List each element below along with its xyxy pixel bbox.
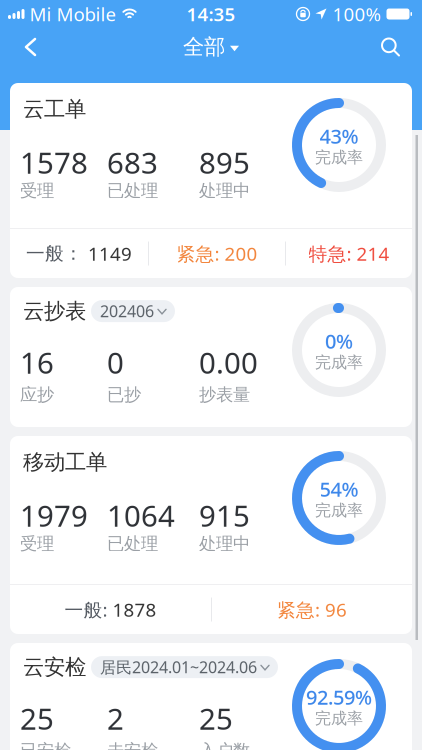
staticText: 96 bbox=[325, 597, 347, 622]
staticText: 54% bbox=[319, 476, 358, 502]
staticText: 214 bbox=[356, 241, 389, 266]
staticText: 1979 bbox=[20, 496, 88, 535]
staticText: 处理中 bbox=[199, 533, 250, 554]
button[interactable]: Search bbox=[381, 28, 422, 65]
staticText: 应抄 bbox=[20, 384, 54, 405]
staticText: Mi Mobile bbox=[29, 2, 116, 26]
staticText: 全部 bbox=[183, 34, 225, 60]
staticText: 200 bbox=[224, 241, 257, 266]
staticText: 915 bbox=[199, 496, 250, 535]
staticText: 居民2024.01~2024.06 bbox=[100, 656, 257, 678]
staticText: 紧急: bbox=[277, 597, 320, 622]
button[interactable]: Back bbox=[0, 28, 35, 66]
staticText: 2 bbox=[107, 699, 124, 738]
staticText: 一般： bbox=[26, 242, 83, 265]
staticText: 抄表量 bbox=[199, 384, 250, 405]
staticText: 入户数 bbox=[199, 740, 250, 750]
staticText: 移动工单 bbox=[23, 449, 107, 475]
staticText: 完成率 bbox=[315, 501, 363, 520]
button[interactable]: 云安检 bbox=[10, 643, 412, 750]
staticText: 25 bbox=[20, 699, 54, 738]
staticText: 未安检 bbox=[107, 740, 158, 750]
staticText: 一般: bbox=[64, 597, 107, 622]
staticText: 完成率 bbox=[315, 709, 363, 728]
button[interactable]: 移动工单 bbox=[10, 436, 412, 634]
button[interactable]: 云抄表 bbox=[10, 287, 412, 427]
staticText: 云工单 bbox=[23, 96, 86, 122]
staticText: 已安检 bbox=[20, 740, 71, 750]
staticText: 紧急: bbox=[176, 241, 219, 266]
staticText: 25 bbox=[199, 699, 233, 738]
staticText: 683 bbox=[107, 143, 158, 182]
staticText: 43% bbox=[319, 123, 358, 149]
staticText: 完成率 bbox=[315, 148, 363, 167]
staticText: 0 bbox=[107, 343, 124, 382]
staticText: 1064 bbox=[107, 496, 175, 535]
staticText: 已处理 bbox=[107, 180, 158, 201]
staticText: 已抄 bbox=[107, 384, 141, 405]
staticText: 0% bbox=[325, 328, 353, 354]
staticText: 云抄表 bbox=[23, 298, 86, 324]
staticText: 1149 bbox=[88, 241, 132, 266]
staticText: 0.00 bbox=[199, 343, 258, 382]
staticText: 受理 bbox=[20, 533, 54, 554]
staticText: 895 bbox=[199, 143, 250, 182]
staticText: 100% bbox=[332, 2, 381, 26]
staticText: 1578 bbox=[20, 143, 88, 182]
staticText: 16 bbox=[20, 343, 54, 382]
button[interactable]: 全部 bbox=[183, 34, 239, 60]
button[interactable]: 云工单 bbox=[10, 83, 412, 278]
staticText: 92.59% bbox=[306, 684, 372, 710]
staticText: 1878 bbox=[112, 597, 156, 622]
staticText: 202406 bbox=[100, 300, 154, 322]
staticText: 已处理 bbox=[107, 533, 158, 554]
staticText: 完成率 bbox=[315, 353, 363, 372]
staticText: 特急: bbox=[308, 241, 351, 266]
staticText: 云安检 bbox=[23, 654, 86, 680]
button[interactable]: 居民2024.01~2024.06 bbox=[91, 656, 278, 678]
button[interactable]: 202406 bbox=[91, 300, 175, 322]
staticText: 受理 bbox=[20, 180, 54, 201]
staticText: 处理中 bbox=[199, 180, 250, 201]
staticText: 14:35 bbox=[186, 2, 235, 26]
